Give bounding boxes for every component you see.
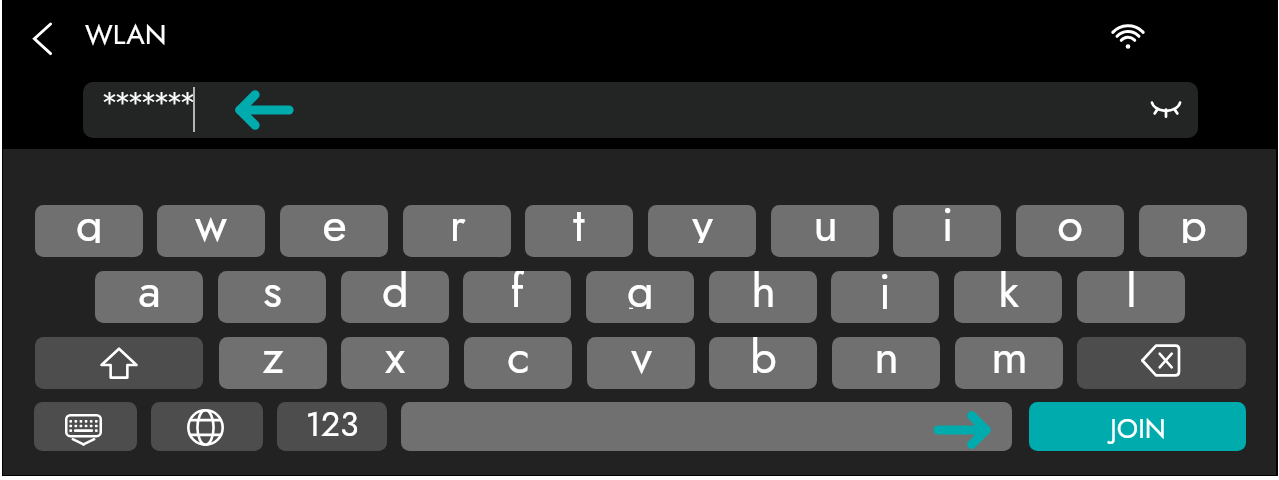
button[interactable]: q	[35, 205, 143, 257]
staticText: h	[751, 271, 776, 309]
button[interactable]: Show password	[1148, 90, 1184, 126]
staticText: *******	[103, 88, 194, 118]
button[interactable]: s	[218, 271, 326, 323]
button[interactable]: v	[587, 337, 695, 389]
staticText: r	[449, 205, 466, 243]
staticText: m	[991, 337, 1028, 375]
button[interactable]: g	[586, 271, 694, 323]
staticText: o	[1057, 205, 1083, 243]
staticText: 123	[305, 402, 359, 449]
button[interactable]: c	[464, 337, 572, 389]
button[interactable]: Shift	[35, 337, 203, 389]
staticText: i	[941, 205, 954, 243]
button[interactable]: j	[831, 271, 939, 323]
button[interactable]: a	[95, 271, 203, 323]
button[interactable]: JOIN	[1029, 402, 1246, 451]
button[interactable]: p	[1139, 205, 1247, 257]
staticText: f	[510, 271, 524, 309]
staticText: g	[627, 271, 654, 309]
staticText: c	[507, 337, 530, 375]
button[interactable]: u	[771, 205, 879, 257]
button[interactable]: w	[157, 205, 265, 257]
button[interactable]: x	[341, 337, 449, 389]
staticText: e	[322, 205, 347, 243]
button[interactable]: b	[709, 337, 817, 389]
staticText: j	[879, 271, 891, 309]
button[interactable]: t	[525, 205, 633, 257]
staticText: q	[76, 205, 103, 243]
staticText: k	[998, 271, 1019, 309]
staticText: w	[195, 205, 227, 243]
button[interactable]: Back	[18, 15, 64, 61]
button[interactable]: y	[648, 205, 756, 257]
button[interactable]: Hide keyboard	[34, 402, 137, 451]
button[interactable]: k	[954, 271, 1062, 323]
button[interactable]: Space	[401, 402, 1012, 451]
staticText: b	[750, 337, 777, 375]
button[interactable]: r	[403, 205, 511, 257]
button[interactable]: d	[341, 271, 449, 323]
staticText: JOIN	[1110, 409, 1166, 448]
staticText: d	[382, 271, 409, 309]
button[interactable]: h	[709, 271, 817, 323]
staticText: l	[1126, 271, 1137, 309]
button[interactable]: f	[463, 271, 571, 323]
button[interactable]: o	[1016, 205, 1124, 257]
button[interactable]: Backspace	[1077, 337, 1246, 389]
staticText: v	[631, 337, 652, 375]
button[interactable]: Wi-Fi	[1104, 12, 1152, 60]
staticText: u	[813, 205, 838, 243]
button[interactable]: e	[280, 205, 388, 257]
button[interactable]: Change language	[151, 402, 263, 451]
button[interactable]: *******	[83, 82, 1198, 138]
staticText: z	[262, 337, 284, 375]
staticText: WLAN	[85, 14, 167, 54]
button[interactable]: z	[219, 337, 327, 389]
button[interactable]: n	[832, 337, 940, 389]
staticText: y	[692, 205, 713, 243]
button[interactable]: m	[955, 337, 1063, 389]
button[interactable]: 123	[277, 402, 387, 451]
staticText: p	[1180, 205, 1207, 243]
staticText: s	[263, 271, 282, 309]
staticText: n	[874, 337, 899, 375]
button[interactable]: l	[1077, 271, 1185, 323]
staticText: x	[385, 337, 405, 375]
staticText: t	[573, 205, 585, 243]
button[interactable]: i	[893, 205, 1001, 257]
staticText: a	[138, 271, 161, 309]
